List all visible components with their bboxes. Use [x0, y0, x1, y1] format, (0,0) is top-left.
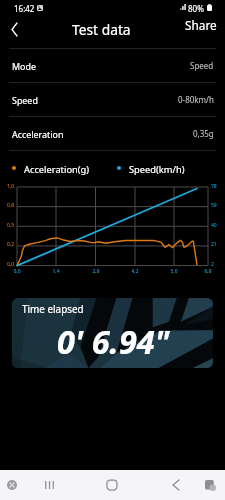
button[interactable]: Speed [0, 83, 225, 116]
button[interactable]: Back [0, 13, 28, 46]
button[interactable]: Mode [0, 49, 225, 82]
staticText: 16:42 [14, 3, 35, 14]
button[interactable]: Home [94, 470, 130, 500]
staticText: 0-80km/h [178, 94, 214, 105]
staticText: 0,35g [193, 128, 214, 139]
button[interactable]: Share [176, 12, 223, 38]
staticText: 0' 6.94" [57, 319, 170, 363]
staticText: 59 [211, 202, 217, 209]
staticText: Time elapsed [22, 302, 84, 315]
staticText: 5,6 [164, 268, 184, 275]
staticText: 0,8 [7, 202, 15, 209]
staticText: 40 [211, 222, 217, 229]
staticText: Speed(km/h) [129, 163, 185, 176]
staticText: 0,5 [7, 222, 15, 229]
staticText: 78 [211, 183, 217, 190]
staticText: Share [185, 17, 217, 33]
staticText: 0,0 [7, 261, 15, 268]
staticText: Mode [12, 60, 36, 72]
button[interactable]: Recent apps [31, 470, 67, 500]
button[interactable]: Back [158, 470, 193, 500]
staticText: 0,0 [7, 268, 27, 275]
staticText: Speed [12, 94, 38, 106]
button[interactable]: Screenshot [195, 470, 225, 500]
staticText: 2,8 [86, 268, 106, 275]
staticText: 2 [211, 261, 214, 268]
staticText: Acceleration(g) [24, 163, 90, 176]
staticText: Acceleration [12, 128, 64, 140]
button[interactable]: Acceleration [0, 117, 225, 150]
staticText: 80% [188, 3, 204, 14]
staticText: Speed [190, 60, 214, 71]
staticText: 0,2 [7, 241, 15, 248]
staticText: 6,8 [198, 268, 218, 275]
button[interactable]: Accessibility [0, 470, 26, 500]
staticText: 21 [211, 241, 217, 248]
staticText: 1,4 [46, 268, 66, 275]
staticText: 1,0 [7, 183, 15, 190]
button[interactable]: Time elapsed [12, 298, 213, 368]
staticText: 4,2 [125, 268, 145, 275]
staticText: Test data [72, 20, 131, 39]
